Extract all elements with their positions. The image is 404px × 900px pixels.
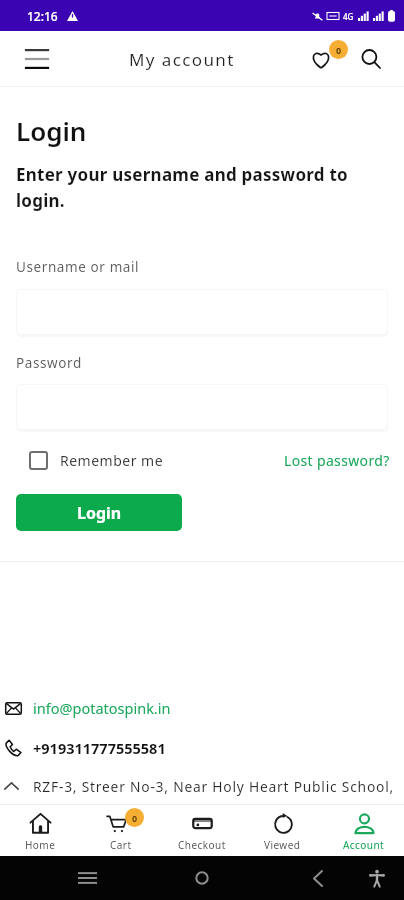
button[interactable]: Lost password?: [284, 451, 390, 470]
staticText: Cart: [110, 838, 132, 852]
button[interactable]: Remember me: [29, 451, 164, 470]
button[interactable]: Recent apps: [71, 862, 103, 894]
staticText: Checkout: [178, 838, 226, 852]
staticText: Home: [25, 838, 56, 852]
button[interactable]: Menu: [15, 37, 59, 81]
button[interactable]: Checkout: [161, 804, 242, 856]
staticText: Account: [343, 838, 385, 852]
button[interactable]: 0: [80, 804, 161, 856]
staticText: Lost password?: [284, 451, 390, 470]
button[interactable]: Search: [351, 39, 391, 79]
button[interactable]: Login: [16, 494, 182, 531]
button[interactable]: Home: [186, 862, 218, 894]
staticText: Viewed: [264, 838, 301, 852]
staticText: 0: [336, 44, 342, 56]
button[interactable]: Wishlist: [307, 37, 351, 81]
button[interactable]: Back: [302, 862, 334, 894]
staticText: My account: [129, 48, 235, 71]
button[interactable]: RZF-3, Streer No-3, Near Holy Heart Publ…: [0, 768, 404, 804]
button[interactable]: info@potatospink.in: [0, 688, 404, 728]
button[interactable]: Viewed: [242, 804, 323, 856]
staticText: Password: [16, 354, 82, 372]
button[interactable]: Accessibility: [361, 862, 393, 894]
staticText: Login: [77, 502, 122, 524]
button[interactable]: Account: [323, 804, 404, 856]
staticText: 4G: [343, 11, 354, 22]
staticText: Username or mail: [16, 258, 140, 276]
staticText: info@potatospink.in: [33, 698, 171, 718]
staticText: +919311777555581: [33, 738, 166, 758]
button[interactable]: +919311777555581: [0, 728, 404, 768]
staticText: Login: [16, 113, 87, 148]
button[interactable]: Home: [0, 804, 80, 856]
staticText: Enter your username and password to logi…: [16, 163, 361, 212]
staticText: 0: [132, 812, 138, 824]
staticText: Remember me: [60, 451, 164, 470]
staticText: 12:16: [27, 8, 58, 24]
staticText: RZF-3, Streer No-3, Near Holy Heart Publ…: [33, 777, 394, 796]
